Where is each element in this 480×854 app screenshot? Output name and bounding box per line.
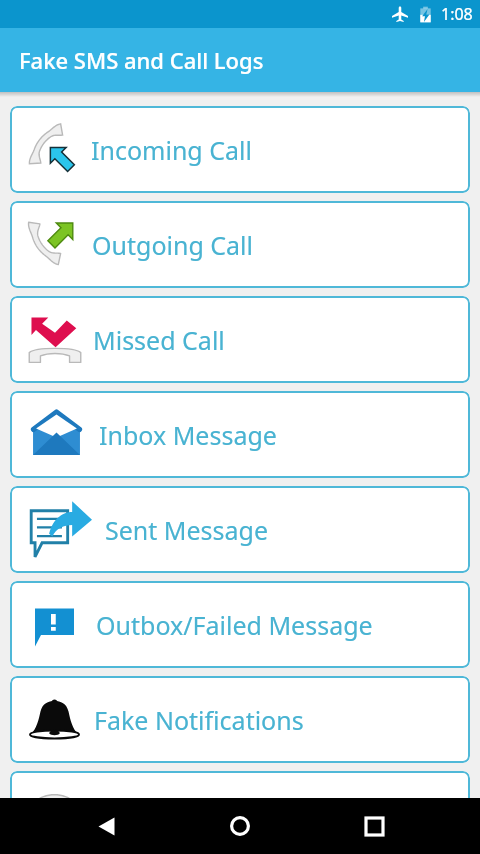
staticText: Missed Call xyxy=(93,323,225,357)
button[interactable]: Missed Call xyxy=(10,296,470,383)
staticText: Fake SMS and Call Logs xyxy=(19,45,264,75)
button[interactable]: Inbox Message xyxy=(10,391,470,478)
button[interactable]: Outgoing Call xyxy=(10,201,470,288)
staticText: Inbox Message xyxy=(99,418,277,452)
button[interactable]: Fake Notifications xyxy=(10,676,470,763)
button[interactable]: Outbox/Failed Message xyxy=(10,581,470,668)
staticText: Incoming Call xyxy=(91,133,252,167)
staticText: Outbox/Failed Message xyxy=(96,608,373,642)
button[interactable]: Call Log xyxy=(10,771,470,798)
button[interactable]: Back xyxy=(78,798,134,854)
button[interactable]: Recent apps xyxy=(346,798,402,854)
staticText: Sent Message xyxy=(105,513,269,547)
button[interactable]: Home xyxy=(212,798,268,854)
staticText: Fake Notifications xyxy=(94,703,304,737)
staticText: Outgoing Call xyxy=(92,228,254,262)
staticText: 1:08 xyxy=(441,3,473,25)
button[interactable]: Sent Message xyxy=(10,486,470,573)
button[interactable]: Incoming Call xyxy=(10,106,470,193)
